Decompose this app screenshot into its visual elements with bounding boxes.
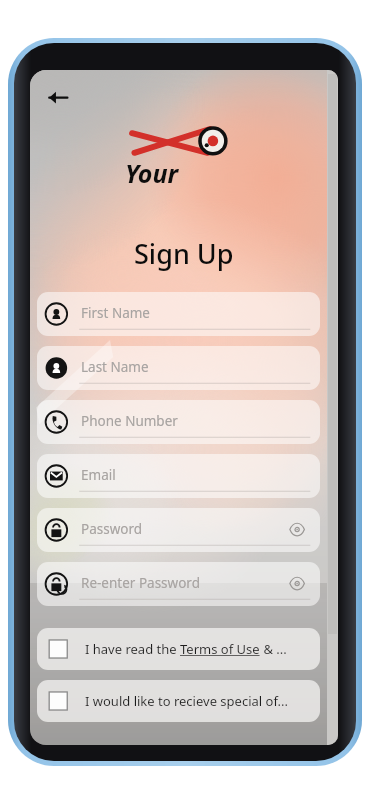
button[interactable]: Phone Number [37,400,320,444]
button[interactable]: Password [37,508,320,552]
staticText: Sign Up [134,235,234,272]
button[interactable]: Email [37,454,320,498]
button[interactable]: First Name [37,292,320,336]
staticText: & ... [260,640,287,658]
button[interactable]: Re-enter Password [37,562,320,606]
staticText: Your Sushi [125,156,243,190]
button[interactable]: I have read the [37,628,320,670]
staticText: Password [81,520,143,538]
staticText: Terms of Use [180,640,260,658]
staticText: Email [81,466,116,484]
staticText: I have read the [85,640,180,658]
staticText: Re-enter Password [81,574,200,592]
staticText: Phone Number [81,412,178,430]
staticText: I would like to recieve special of... [85,692,289,710]
staticText: Last Name [81,358,149,376]
button[interactable]: Last Name [37,346,320,390]
staticText: First Name [81,304,150,322]
button[interactable]: I would like to recieve special of... [37,680,320,722]
button[interactable]: Back [42,80,76,114]
